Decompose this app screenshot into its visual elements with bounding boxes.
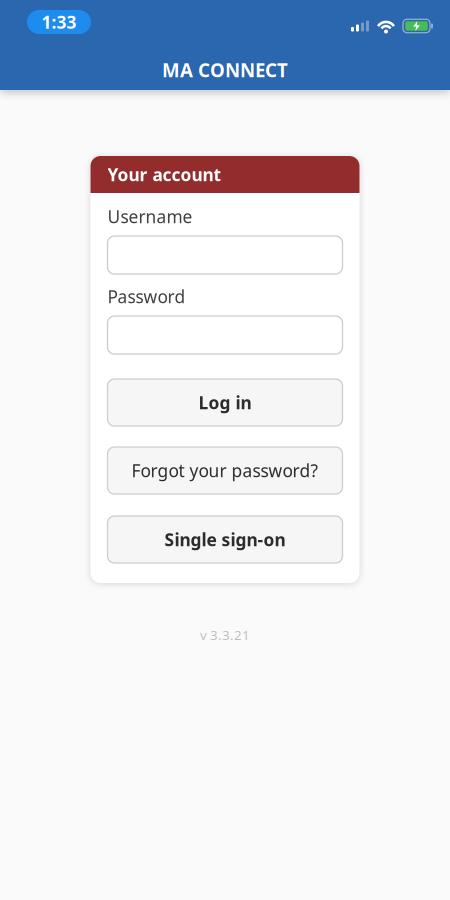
staticText: Your account — [107, 163, 221, 186]
staticText: Password — [107, 285, 185, 308]
staticText: v 3.3.21 — [200, 626, 250, 644]
button[interactable]: Password — [107, 316, 342, 354]
staticText: Username — [107, 205, 192, 228]
staticText: Log in — [198, 391, 251, 414]
staticText: Forgot your password? — [131, 459, 318, 482]
button[interactable]: Username — [107, 236, 342, 274]
button[interactable]: Log in — [107, 379, 342, 426]
staticText: Single sign-on — [164, 528, 285, 551]
staticText: MA CONNECT — [162, 58, 288, 82]
button[interactable]: Forgot your password? — [107, 447, 342, 494]
staticText: 1:33 — [41, 10, 76, 33]
button[interactable]: Single sign-on — [107, 516, 342, 563]
